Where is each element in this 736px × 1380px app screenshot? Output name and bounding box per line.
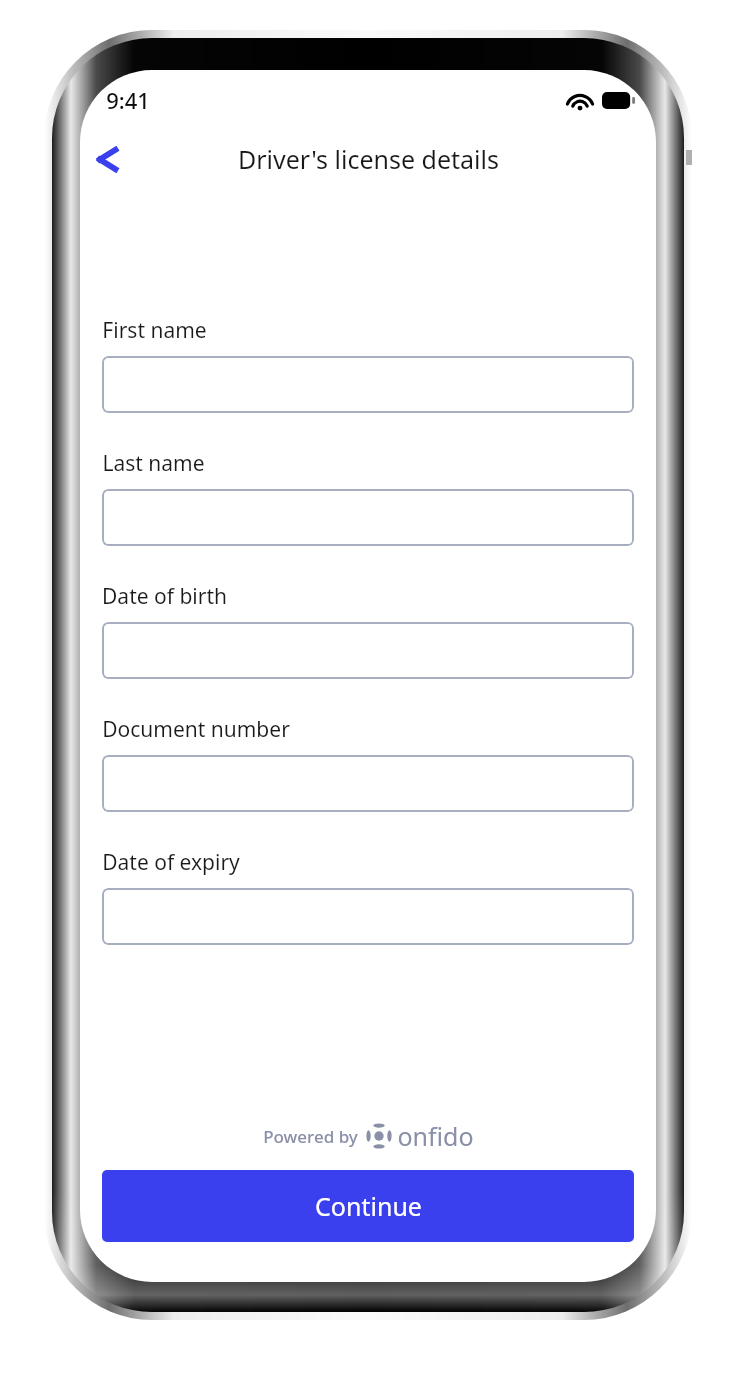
staticText: Continue [315, 1189, 422, 1223]
staticText: Powered by [263, 1125, 358, 1148]
staticText: Last name [102, 449, 205, 478]
staticText: onfido [397, 1119, 474, 1153]
button[interactable]: Last name [102, 489, 634, 546]
button[interactable]: First name [102, 356, 634, 413]
button[interactable]: Date of birth [102, 622, 634, 679]
staticText: 9:41 [106, 85, 150, 115]
button[interactable]: Continue [102, 1170, 634, 1242]
staticText: First name [102, 316, 207, 345]
button[interactable]: Document number [102, 755, 634, 812]
button[interactable]: Back [84, 135, 132, 183]
staticText: Document number [102, 715, 290, 744]
button[interactable]: Date of expiry [102, 888, 634, 945]
staticText: Date of birth [102, 582, 227, 611]
staticText: Date of expiry [102, 848, 240, 877]
staticText: Driver's license details [238, 142, 499, 176]
